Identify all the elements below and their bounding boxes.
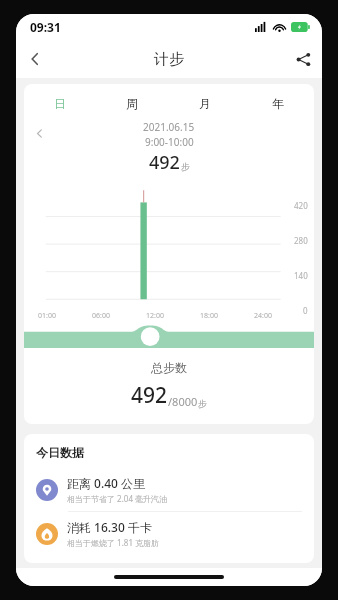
button[interactable]: 周: [96, 92, 168, 114]
staticText: 280: [294, 235, 308, 246]
staticText: 月: [199, 96, 211, 111]
staticText: 24:00: [254, 311, 272, 321]
staticText: 140: [294, 270, 308, 281]
button[interactable]: Back: [16, 40, 54, 78]
staticText: /8000: [168, 394, 198, 409]
button[interactable]: 距离 0.40 公里: [36, 468, 302, 511]
staticText: 年: [272, 96, 284, 111]
staticText: 18:00: [200, 311, 218, 321]
button[interactable]: 月: [168, 92, 241, 114]
staticText: 总步数: [24, 360, 314, 375]
staticText: 步: [198, 398, 207, 409]
staticText: 步: [181, 161, 190, 172]
staticText: 420: [294, 200, 308, 211]
staticText: 01:00: [38, 311, 56, 321]
button[interactable]: 消耗 16.30 千卡: [36, 512, 302, 555]
button[interactable]: Previous: [28, 122, 50, 144]
staticText: 12:00: [146, 311, 164, 321]
staticText: 9:00-10:00: [145, 135, 194, 149]
staticText: 492: [131, 381, 168, 410]
staticText: 0: [303, 305, 308, 316]
button[interactable]: 年: [241, 92, 314, 114]
staticText: 492: [149, 150, 180, 174]
staticText: 消耗 16.30 千卡: [67, 519, 152, 535]
staticText: 日: [54, 96, 66, 111]
staticText: 今日数据: [36, 445, 84, 460]
staticText: 距离 0.40 公里: [67, 475, 146, 491]
staticText: 06:00: [92, 311, 110, 321]
button[interactable]: Share: [284, 40, 322, 78]
staticText: 计步: [154, 50, 184, 69]
staticText: 09:31: [30, 19, 61, 35]
button[interactable]: Time range slider: [24, 324, 314, 350]
staticText: 相当于燃烧了 1.81 克脂肪: [67, 537, 160, 548]
staticText: 2021.06.15: [143, 120, 195, 134]
button[interactable]: 日: [24, 92, 96, 114]
staticText: 相当于节省了 2.04 毫升汽油: [67, 493, 168, 504]
staticText: 周: [126, 96, 138, 111]
